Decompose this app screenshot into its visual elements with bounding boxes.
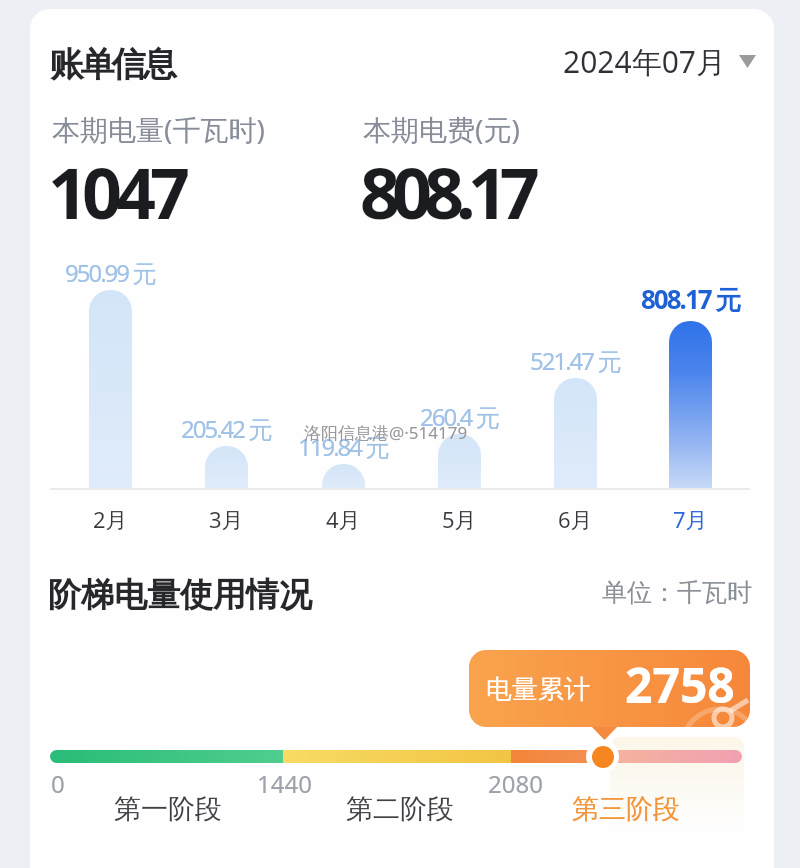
staticText: 2080: [488, 767, 543, 800]
button[interactable]: [469, 650, 750, 727]
staticText: 2月: [93, 504, 128, 534]
staticText: 7月: [673, 504, 708, 534]
staticText: 260.4 元: [420, 400, 498, 433]
staticText: 本期电量(千瓦时): [52, 110, 265, 148]
staticText: 1440: [257, 767, 312, 800]
staticText: 账单信息: [51, 43, 175, 86]
staticText: 5月: [442, 504, 477, 534]
staticText: 205.42 元: [181, 412, 271, 445]
staticText: 950.99 元: [65, 256, 155, 289]
staticText: 第一阶段: [114, 792, 222, 826]
button[interactable]: 2024年07月: [563, 41, 756, 82]
staticText: 3月: [209, 504, 244, 534]
staticText: 洛阳信息港@·514179: [304, 421, 468, 444]
staticText: 808.17 元: [641, 281, 740, 317]
staticText: 阶梯电量使用情况: [48, 574, 312, 616]
staticText: 4月: [326, 504, 361, 534]
staticText: 521.47 元: [530, 344, 620, 377]
staticText: 6月: [558, 504, 593, 534]
staticText: 单位：千瓦时: [602, 577, 752, 608]
staticText: 2024年07月: [563, 41, 726, 82]
staticText: 本期电费(元): [363, 110, 520, 148]
staticText: 119.84 元: [298, 430, 388, 463]
staticText: 2758: [625, 652, 735, 717]
staticText: 0: [51, 767, 65, 800]
staticText: 第二阶段: [346, 792, 454, 826]
staticText: 1047: [48, 144, 185, 239]
staticText: 第三阶段: [572, 792, 680, 826]
staticText: 电量累计: [486, 673, 590, 706]
staticText: 808.17: [360, 144, 532, 239]
